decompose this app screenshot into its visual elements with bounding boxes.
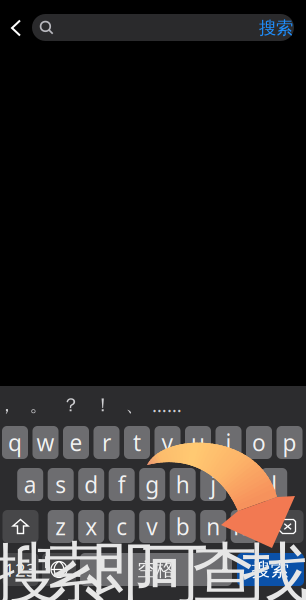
button[interactable]: …… bbox=[151, 390, 183, 420]
staticText: a bbox=[24, 469, 37, 499]
button[interactable]: y bbox=[154, 426, 180, 459]
button[interactable]: w bbox=[32, 426, 58, 459]
staticText: 123 bbox=[4, 557, 37, 582]
staticText: 搜索 bbox=[251, 558, 289, 581]
staticText: c bbox=[116, 511, 127, 541]
button[interactable]: 123 bbox=[2, 553, 38, 586]
button[interactable]: n bbox=[200, 510, 226, 543]
staticText: ， bbox=[0, 393, 16, 416]
staticText: b bbox=[176, 511, 190, 541]
staticText: …… bbox=[152, 393, 182, 417]
button[interactable]: b bbox=[170, 510, 196, 543]
button[interactable]: 搜索 bbox=[256, 14, 296, 42]
button[interactable]: 空格 bbox=[80, 553, 232, 586]
staticText: t bbox=[133, 427, 141, 457]
button[interactable]: u bbox=[185, 426, 211, 459]
button[interactable]: Shift bbox=[2, 510, 38, 543]
button[interactable]: a bbox=[17, 468, 43, 501]
staticText: f bbox=[118, 469, 126, 499]
button[interactable]: d bbox=[78, 468, 104, 501]
button[interactable]: g bbox=[139, 468, 165, 501]
button[interactable]: ？ bbox=[55, 390, 87, 420]
button[interactable]: ， bbox=[0, 390, 23, 420]
staticText: 、 bbox=[125, 393, 144, 416]
button[interactable]: j bbox=[200, 468, 226, 501]
button[interactable]: s bbox=[48, 468, 74, 501]
staticText: d bbox=[84, 469, 98, 499]
staticText: m bbox=[233, 511, 254, 541]
button[interactable]: 。 bbox=[23, 390, 55, 420]
button[interactable]: o bbox=[246, 426, 272, 459]
button[interactable]: f bbox=[109, 468, 135, 501]
staticText: 索 bbox=[42, 533, 109, 600]
staticText: x bbox=[85, 511, 97, 541]
staticText: 空格 bbox=[137, 558, 175, 581]
staticText: r bbox=[102, 427, 111, 457]
staticText: 查 bbox=[192, 533, 259, 600]
staticText: 可 bbox=[142, 533, 209, 600]
staticText: ？ bbox=[61, 393, 80, 416]
button[interactable]: v bbox=[139, 510, 165, 543]
staticText: i bbox=[225, 427, 231, 457]
button[interactable]: 、 bbox=[119, 390, 151, 420]
staticText: k bbox=[238, 469, 250, 499]
button[interactable]: Search field bbox=[32, 14, 280, 41]
staticText: u bbox=[191, 427, 205, 457]
staticText: 找 bbox=[242, 533, 306, 600]
button[interactable]: q bbox=[2, 426, 28, 459]
staticText: 。 bbox=[29, 393, 48, 416]
button[interactable]: c bbox=[109, 510, 135, 543]
button[interactable]: Back bbox=[3, 13, 29, 43]
button[interactable]: Delete bbox=[267, 510, 303, 543]
staticText: s bbox=[55, 469, 66, 499]
staticText: w bbox=[36, 427, 54, 457]
button[interactable]: i bbox=[215, 426, 241, 459]
staticText: h bbox=[176, 469, 190, 499]
staticText: ！ bbox=[93, 393, 112, 416]
staticText: 搜 bbox=[0, 533, 58, 600]
staticText: e bbox=[69, 427, 82, 457]
staticText: z bbox=[55, 511, 66, 541]
staticText: y bbox=[161, 427, 173, 457]
staticText: j bbox=[210, 469, 216, 499]
staticText: 即 bbox=[92, 533, 159, 600]
button[interactable]: 搜索 bbox=[237, 553, 304, 586]
button[interactable]: e bbox=[63, 426, 89, 459]
staticText: l bbox=[271, 469, 277, 499]
button[interactable]: x bbox=[78, 510, 104, 543]
button[interactable]: p bbox=[276, 426, 302, 459]
staticText: q bbox=[8, 427, 22, 457]
staticText: 搜索 bbox=[259, 17, 293, 39]
button[interactable]: t bbox=[124, 426, 150, 459]
staticText: o bbox=[252, 427, 266, 457]
button[interactable]: r bbox=[93, 426, 119, 459]
button[interactable]: ！ bbox=[87, 390, 119, 420]
staticText: p bbox=[282, 427, 296, 457]
button[interactable]: m bbox=[231, 510, 257, 543]
button[interactable]: l bbox=[261, 468, 287, 501]
button[interactable]: h bbox=[170, 468, 196, 501]
staticText: n bbox=[206, 511, 220, 541]
button[interactable]: k bbox=[231, 468, 257, 501]
staticText: v bbox=[146, 511, 158, 541]
staticText: g bbox=[145, 469, 159, 499]
button[interactable]: Next keyboard bbox=[42, 553, 76, 586]
button[interactable]: z bbox=[48, 510, 74, 543]
